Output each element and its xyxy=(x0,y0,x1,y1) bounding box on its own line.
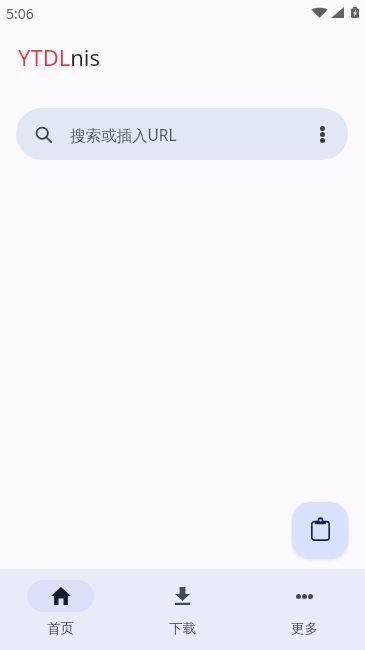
staticText: 更多 xyxy=(291,620,318,637)
button[interactable]: 搜索或插入URL xyxy=(16,108,348,160)
button[interactable]: Paste from clipboard xyxy=(292,502,348,558)
button[interactable]: 更多 xyxy=(243,569,365,650)
staticText: 5:06 xyxy=(6,4,34,23)
staticText: 搜索或插入URL xyxy=(70,124,177,145)
button[interactable]: 下载 xyxy=(121,569,243,650)
staticText: 下载 xyxy=(169,620,196,637)
staticText: 首页 xyxy=(47,620,74,637)
button[interactable]: 首页 xyxy=(0,569,121,650)
staticText: YTDLnis xyxy=(18,42,101,72)
button[interactable]: More options xyxy=(308,120,336,148)
